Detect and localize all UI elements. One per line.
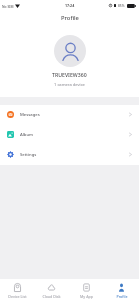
staticText: Album — [20, 132, 34, 138]
staticText: Settings — [20, 152, 37, 158]
staticText: TRUEVIEW360 — [52, 71, 87, 78]
staticText: Messages — [20, 112, 40, 118]
button[interactable]: My App — [69, 279, 104, 300]
staticText: My App — [80, 294, 93, 299]
button[interactable]: Device List — [0, 279, 34, 300]
staticText: 1 camera device — [54, 82, 85, 88]
staticText: Device List — [8, 294, 27, 299]
staticText: Cloud Disk — [42, 294, 61, 299]
button[interactable]: Settings — [0, 145, 139, 165]
staticText: 85% — [118, 4, 125, 8]
button[interactable]: Messages — [0, 105, 139, 125]
button[interactable]: Profile — [104, 279, 139, 300]
button[interactable]: Profile avatar — [54, 35, 86, 67]
staticText: Profile — [116, 294, 128, 299]
staticText: No SIM — [2, 4, 14, 8]
staticText: Profile — [61, 14, 79, 22]
button[interactable]: Cloud Disk — [34, 279, 69, 300]
button[interactable]: Album — [0, 125, 139, 145]
staticText: 17:24 — [65, 3, 75, 8]
